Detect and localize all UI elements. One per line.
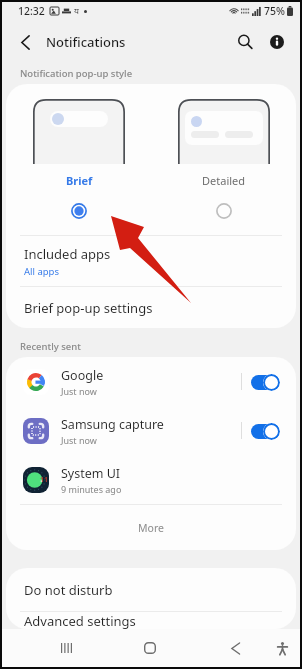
button[interactable]: 11 <box>6 455 296 504</box>
staticText: 12:32 <box>18 4 45 18</box>
button[interactable]: Brief pop-up settings <box>6 287 296 328</box>
staticText: Brief <box>66 173 93 188</box>
staticText: 9 minutes ago <box>61 483 122 495</box>
staticText: Just now <box>61 434 97 446</box>
staticText: Recently sent <box>20 340 81 353</box>
staticText: Do not disturb <box>24 581 113 599</box>
button[interactable]: Included apps <box>6 236 296 286</box>
button[interactable]: Do not disturb <box>6 568 296 611</box>
staticText: Notifications <box>46 33 126 51</box>
staticText: य <box>74 5 79 17</box>
button[interactable]: Detailed <box>213 200 235 222</box>
staticText: Notification pop-up style <box>20 67 133 80</box>
staticText: Included apps <box>24 245 111 263</box>
staticText: Google <box>61 367 104 384</box>
staticText: Advanced settings <box>24 612 136 629</box>
button[interactable]: Help <box>264 29 290 55</box>
button[interactable]: Back <box>216 629 254 667</box>
staticText: Samsung capture <box>61 416 164 433</box>
staticText: 75% <box>264 4 285 18</box>
button[interactable]: Home <box>131 629 169 667</box>
button[interactable]: Brief <box>68 200 90 222</box>
button[interactable]: Google <box>6 357 296 406</box>
staticText: Brief pop-up settings <box>24 299 153 317</box>
button[interactable]: Advanced settings <box>6 612 296 629</box>
button[interactable]: Recents <box>47 629 85 667</box>
button[interactable]: Toggle <box>251 422 280 440</box>
staticText: Just now <box>61 385 97 397</box>
staticText: All apps <box>24 265 60 278</box>
staticText: More <box>138 521 164 535</box>
staticText: 11 <box>40 475 49 485</box>
button[interactable]: Search <box>232 29 258 55</box>
button[interactable]: More <box>6 505 296 550</box>
staticText: Detailed <box>202 173 246 188</box>
staticText: System UI <box>61 465 121 482</box>
button[interactable]: Samsung capture <box>6 406 296 455</box>
button[interactable]: Toggle <box>251 373 280 391</box>
button[interactable]: Accessibility <box>263 629 301 667</box>
button[interactable]: Navigate up <box>13 30 37 54</box>
